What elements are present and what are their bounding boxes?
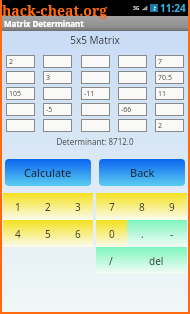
staticText: 9 [169,200,175,214]
button[interactable]: Calculate [5,159,91,186]
button[interactable] [6,119,35,132]
button[interactable] [118,55,147,68]
staticText: 0 [109,227,115,241]
staticText: Back [130,165,155,180]
staticText: Determinant: 8712.0 [2,136,188,147]
staticText: 4 [15,227,21,241]
staticText: Calculate [24,165,72,180]
staticText: 3G [133,5,140,12]
button[interactable]: 6 [63,220,93,247]
button[interactable]: 3 [43,71,72,84]
button[interactable]: 8 [127,193,157,220]
button[interactable]: 105 [6,87,35,100]
staticText: 11 [158,89,167,99]
staticText: 70.5 [158,73,172,83]
button[interactable] [43,119,72,132]
staticText: 2 [9,57,14,67]
button[interactable] [118,87,147,100]
button[interactable] [81,119,110,132]
button[interactable]: -66 [118,103,147,116]
button[interactable]: -5 [43,103,72,116]
button[interactable]: 4 [3,220,33,247]
button[interactable]: 9 [157,193,187,220]
button[interactable] [118,119,147,132]
staticText: 2 [158,121,163,131]
button[interactable]: 70.5 [155,71,184,84]
staticText: / [109,254,113,268]
button[interactable]: 3 [63,193,93,220]
staticText: - [170,227,174,241]
button[interactable] [43,55,72,68]
button[interactable]: -11 [81,87,110,100]
button[interactable] [6,71,35,84]
staticText: 7 [109,200,115,214]
staticText: 5x5 Matrix [2,33,188,47]
button[interactable] [43,87,72,100]
staticText: 2 [45,200,51,214]
button[interactable] [81,55,110,68]
staticText: 6 [75,227,81,241]
button[interactable]: 7 [155,55,184,68]
button[interactable]: 2 [33,193,63,220]
button[interactable]: / [96,247,126,274]
button[interactable] [81,71,110,84]
button[interactable]: 5 [33,220,63,247]
staticText: 3 [46,73,51,83]
button[interactable]: 1 [3,193,33,220]
button[interactable]: 2 [6,55,35,68]
staticText: . [141,227,144,241]
button[interactable] [81,103,110,116]
button[interactable] [6,103,35,116]
staticText: del [149,254,164,268]
staticText: Matrix Determinant [4,18,84,29]
button[interactable]: del [126,247,187,274]
button[interactable]: 11 [155,87,184,100]
button[interactable]: . [127,220,157,247]
button[interactable]: Back [99,159,185,186]
button[interactable]: - [157,220,187,247]
staticText: 5 [45,227,51,241]
button[interactable]: 2 [155,119,184,132]
staticText: -5 [46,105,53,115]
button[interactable]: 7 [96,193,127,220]
staticText: 3 [75,200,81,214]
staticText: 7 [158,57,163,67]
button[interactable] [155,103,184,116]
staticText: 11:24 [160,1,186,15]
button[interactable] [118,71,147,84]
staticText: -11 [84,89,95,99]
staticText: -66 [121,105,132,115]
staticText: 1 [15,200,21,214]
button[interactable]: 0 [96,220,127,247]
staticText: hack-cheat.org [2,1,108,20]
staticText: 105 [9,89,22,99]
staticText: 8 [139,200,145,214]
